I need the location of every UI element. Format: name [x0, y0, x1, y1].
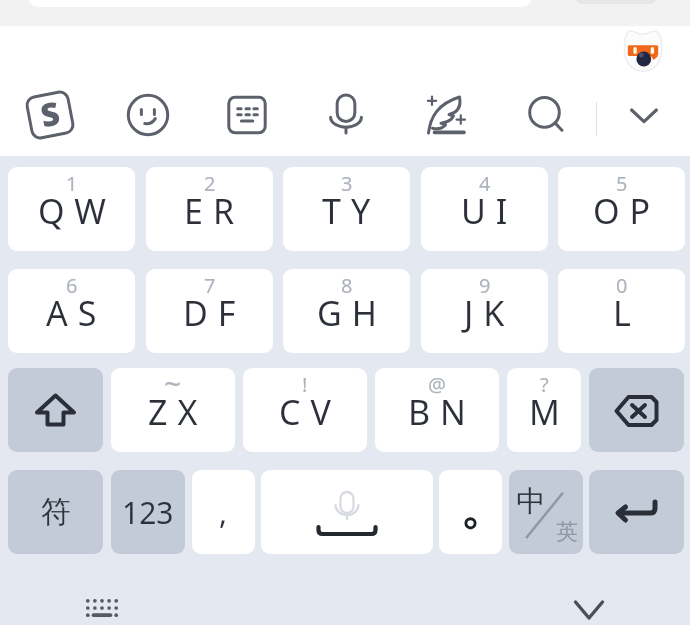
staticText: M — [529, 389, 560, 435]
button[interactable]: 2 — [146, 167, 273, 251]
staticText: OP — [593, 188, 661, 234]
button[interactable]: Keyboard settings — [214, 82, 280, 148]
staticText: AS — [46, 290, 107, 336]
button[interactable]: Enter — [589, 470, 684, 554]
button[interactable]: 5 — [558, 167, 685, 251]
button[interactable]: 0 — [558, 269, 685, 353]
button[interactable]: Period — [439, 470, 502, 554]
button[interactable]: Backspace — [589, 368, 684, 452]
button[interactable]: 9 — [421, 269, 548, 353]
staticText: 8 — [341, 272, 353, 299]
button[interactable]: Switch keyboard — [75, 581, 129, 625]
button[interactable]: Assistant avatar — [619, 27, 667, 75]
button[interactable]: 4 — [421, 167, 548, 251]
staticText: 0 — [616, 272, 628, 299]
button[interactable]: Shift — [8, 368, 103, 452]
staticText: 1 — [66, 170, 78, 197]
staticText: UI — [461, 188, 518, 234]
button[interactable]: , — [192, 470, 255, 554]
button[interactable]: 符 — [8, 470, 103, 554]
button[interactable]: @ — [375, 368, 499, 452]
staticText: L — [613, 290, 631, 336]
button[interactable]: Hide keyboard — [562, 583, 616, 625]
staticText: , — [219, 492, 228, 533]
staticText: 符 — [41, 493, 71, 531]
staticText: ZX — [148, 389, 208, 435]
staticText: S — [37, 91, 64, 137]
button[interactable]: 7 — [146, 269, 273, 353]
staticText: 7 — [204, 272, 216, 299]
staticText: GH — [317, 290, 387, 336]
staticText: 2 — [204, 170, 216, 197]
staticText: 4 — [479, 170, 491, 197]
button[interactable]: 1 — [8, 167, 135, 251]
staticText: 5 — [616, 170, 628, 197]
staticText: 9 — [479, 272, 491, 299]
staticText: @ — [428, 371, 446, 398]
staticText: ? — [540, 371, 549, 398]
button[interactable]: Sogou input method — [17, 82, 83, 148]
button[interactable]: 123 — [111, 470, 185, 554]
button[interactable]: 8 — [283, 269, 410, 353]
button[interactable]: Emoji — [115, 82, 181, 148]
staticText: 3 — [341, 170, 353, 197]
button[interactable]: Handwriting — [413, 82, 479, 148]
staticText: ! — [302, 371, 308, 398]
staticText: QW — [38, 188, 116, 234]
button[interactable]: Search — [512, 82, 578, 148]
staticText: 中 — [516, 483, 545, 520]
staticText: TY — [322, 188, 381, 234]
button[interactable]: More options — [611, 82, 677, 148]
button[interactable]: Space — [261, 470, 433, 554]
button[interactable]: ! — [243, 368, 367, 452]
staticText: 英 — [556, 518, 578, 546]
button[interactable]: ~ — [111, 368, 235, 452]
staticText: DF — [183, 290, 246, 336]
staticText: 6 — [66, 272, 78, 299]
staticText: CV — [279, 389, 341, 435]
staticText: ER — [184, 188, 245, 234]
button[interactable]: 6 — [8, 269, 135, 353]
button[interactable]: Voice input — [313, 82, 379, 148]
button[interactable]: 3 — [283, 167, 410, 251]
staticText: 123 — [122, 492, 174, 533]
staticText: ~ — [164, 368, 182, 404]
button[interactable]: Chinese English toggle — [509, 470, 583, 554]
button[interactable]: ? — [507, 368, 581, 452]
staticText: JK — [464, 290, 515, 336]
staticText: BN — [408, 389, 476, 435]
